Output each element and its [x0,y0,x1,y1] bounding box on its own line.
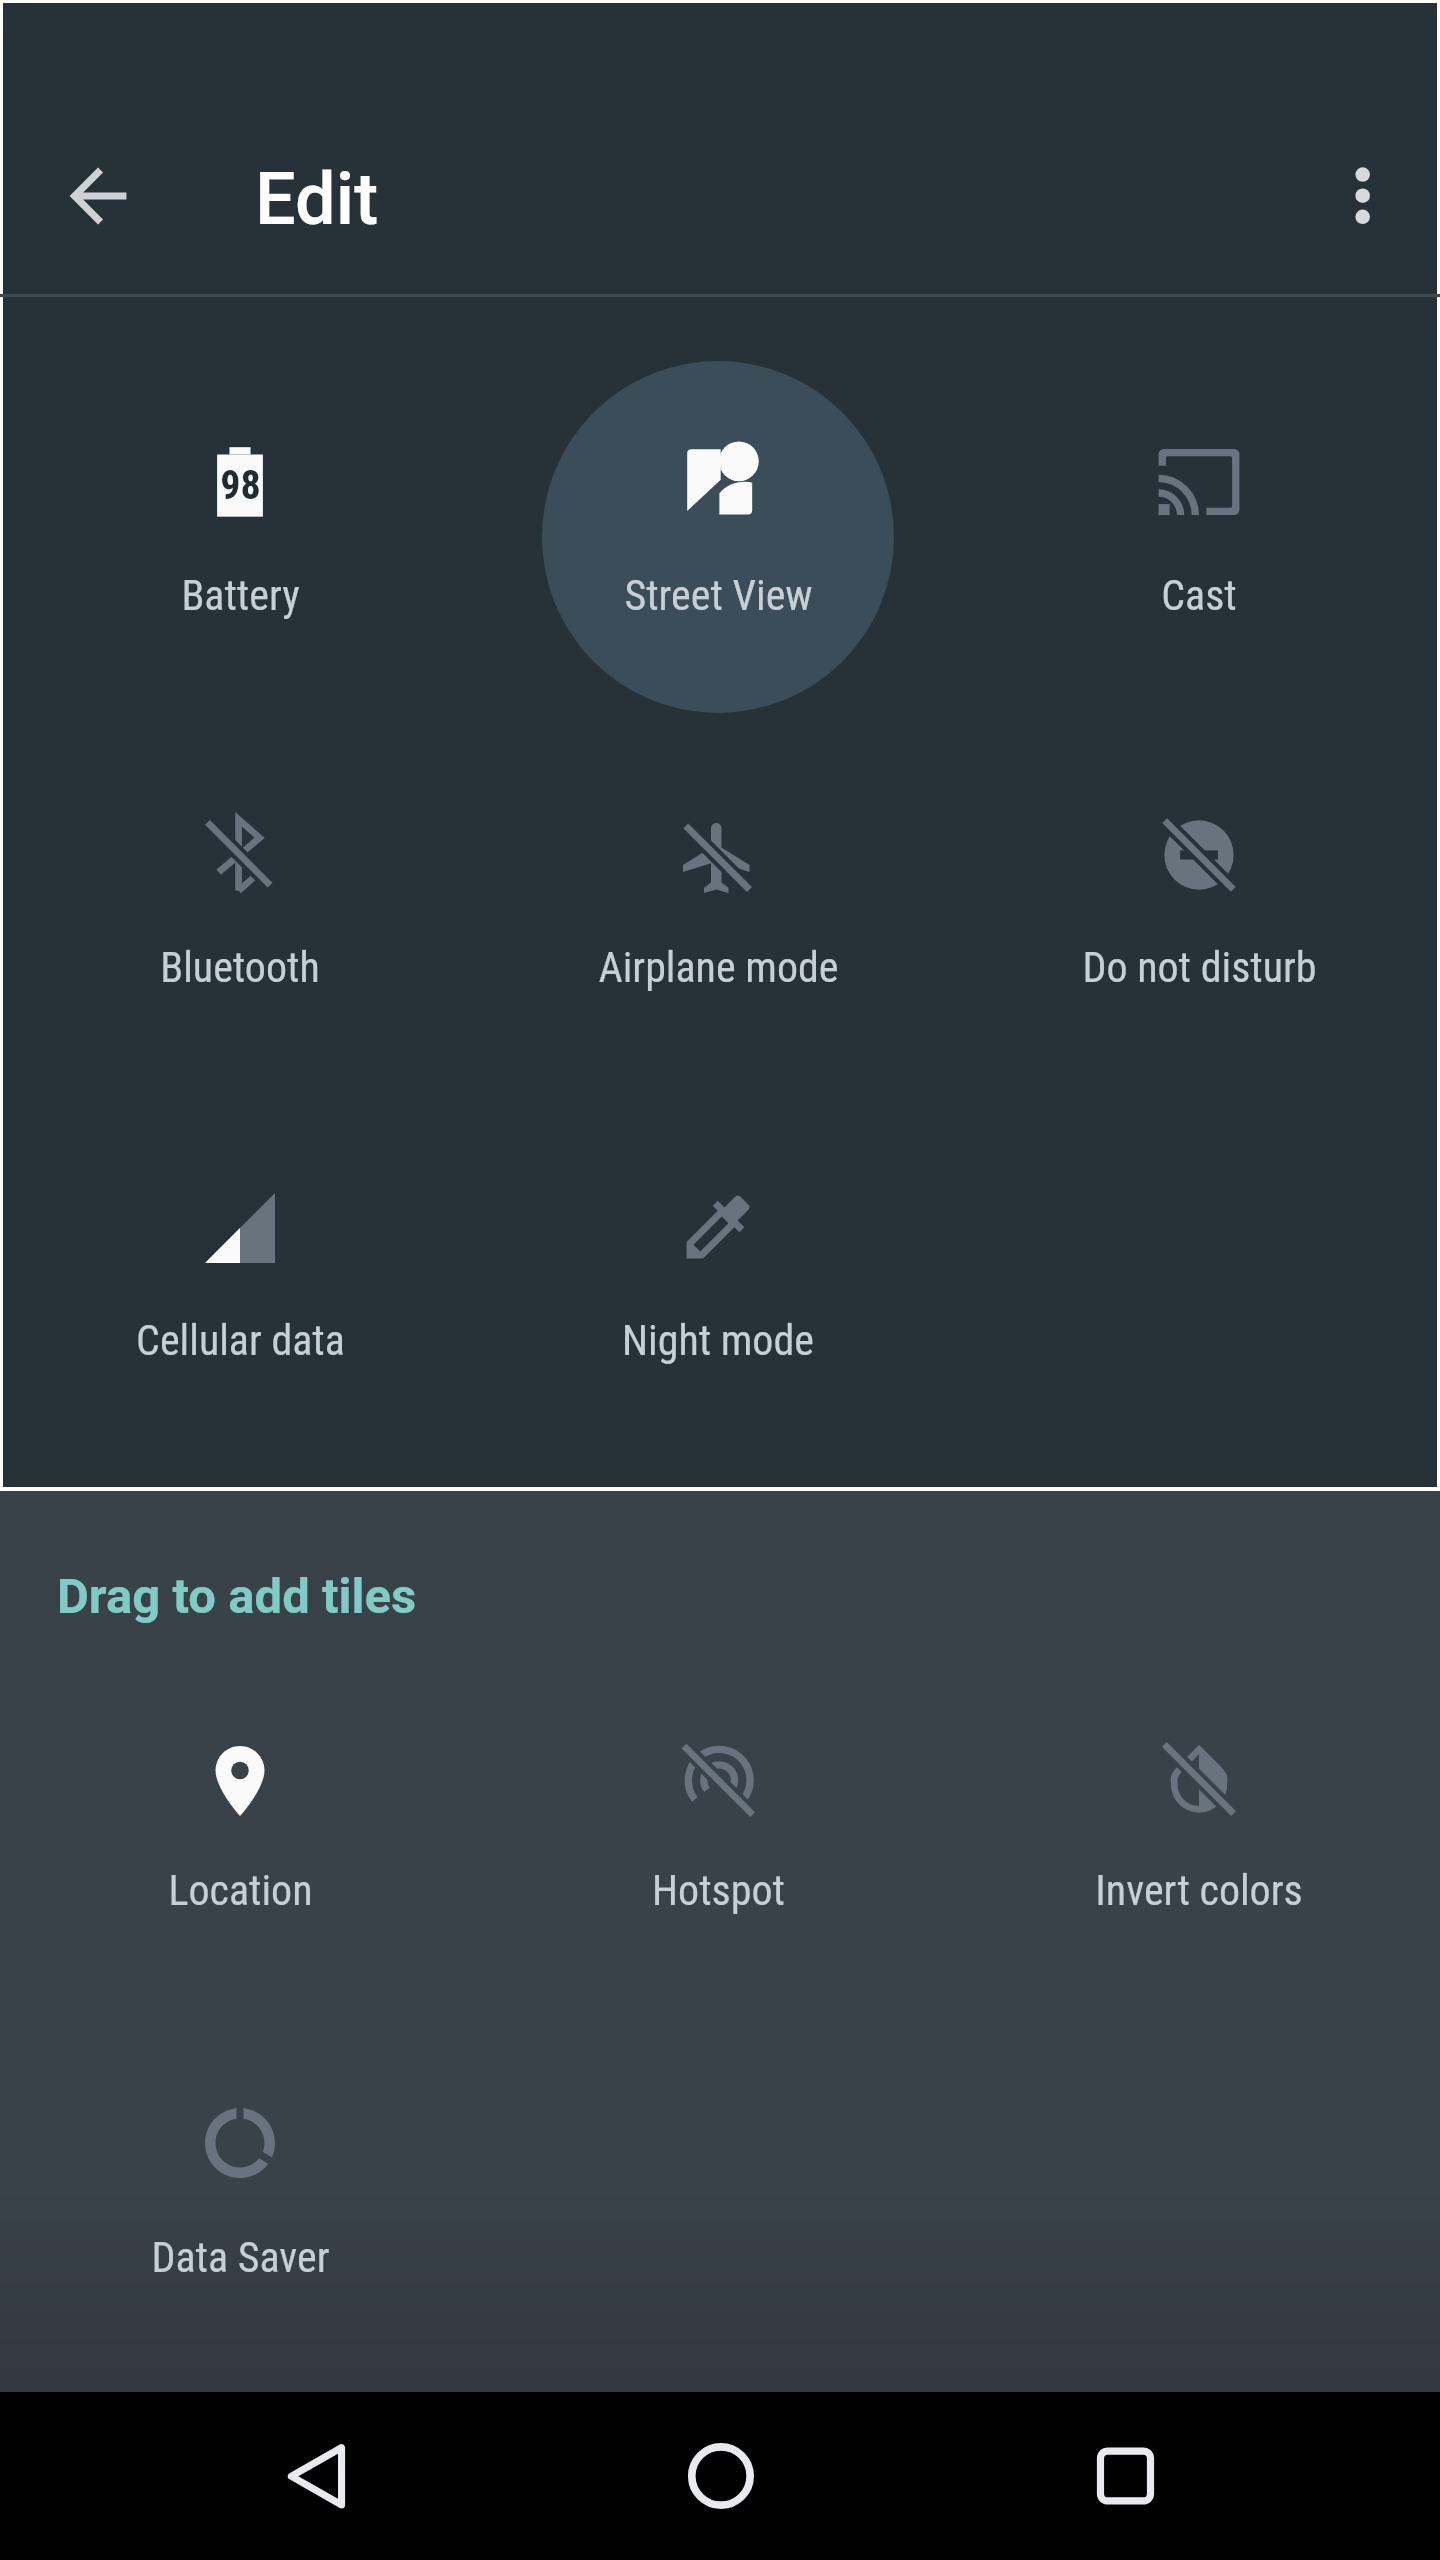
button[interactable] [488,1700,948,1935]
button[interactable]: Home [672,2428,768,2524]
staticText: Location [168,1866,313,1915]
staticText: Drag to add tiles [57,1568,417,1625]
staticText: Invert colors [1095,1866,1303,1915]
button[interactable] [488,778,948,1012]
button[interactable] [488,398,948,640]
staticText: Do not disturb [1082,943,1317,992]
staticText: Data Saver [151,2233,330,2282]
staticText: Night mode [622,1316,814,1365]
button[interactable] [10,1701,470,1935]
staticText: Airplane mode [598,943,839,992]
button[interactable] [969,1699,1429,1935]
button[interactable] [10,406,470,640]
staticText: Cellular data [136,1316,345,1365]
button[interactable] [488,1147,948,1385]
button[interactable] [10,775,470,1012]
button[interactable]: Recent apps [1076,2428,1172,2524]
button[interactable] [969,402,1429,640]
staticText: 98 [220,462,261,509]
button[interactable]: Navigate up [50,148,146,244]
staticText: Battery [181,571,300,620]
button[interactable]: More options [1314,152,1410,248]
button[interactable]: Back [268,2428,364,2524]
staticText: Cast [1161,571,1237,620]
button[interactable] [10,1148,470,1385]
button[interactable] [969,775,1429,1012]
staticText: Edit [255,157,379,241]
staticText: Hotspot [652,1866,785,1915]
staticText: Bluetooth [160,943,320,992]
staticText: Street View [624,571,813,620]
button[interactable] [10,2063,470,2302]
